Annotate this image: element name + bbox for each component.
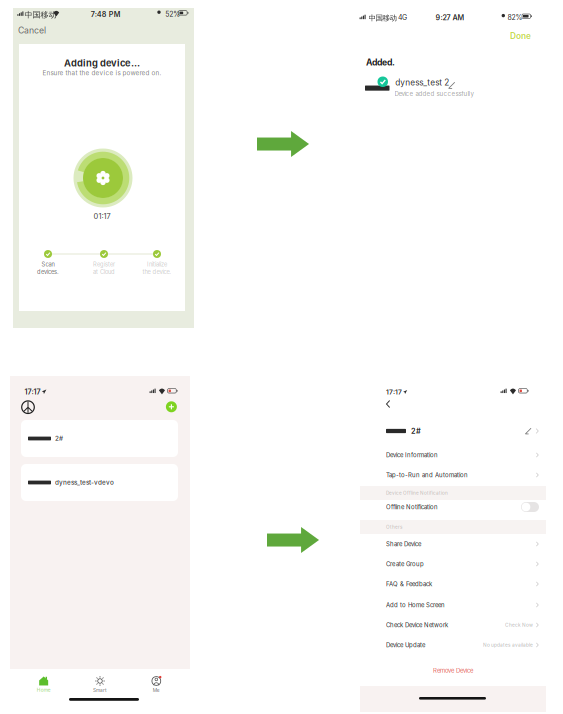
button[interactable]: Share Device [360, 537, 546, 551]
button[interactable]: Create Group [360, 557, 546, 571]
button[interactable]: Check Device Network [360, 618, 546, 632]
staticText: Check Now [505, 622, 533, 628]
staticText: Offline Notification [386, 503, 438, 511]
staticText: Device added successfully [394, 90, 473, 97]
button[interactable]: Remove Device [427, 664, 479, 677]
button[interactable]: Me [128, 676, 184, 693]
staticText: 82% [508, 13, 523, 22]
button[interactable]: Home [15, 676, 72, 693]
staticText: Scan [41, 261, 54, 268]
staticText: No updates available [483, 642, 533, 648]
staticText: 中国移动 [369, 13, 397, 23]
staticText: Others [386, 524, 402, 530]
staticText: 2# [411, 427, 421, 435]
staticText: dyness_test-vdevo [55, 479, 114, 486]
staticText: Register [93, 261, 115, 268]
staticText: Device Information [386, 451, 438, 459]
button[interactable]: Device Update [360, 638, 546, 652]
staticText: 52% [165, 10, 180, 18]
staticText: the device. [142, 268, 171, 275]
staticText: Adding device... [64, 57, 140, 69]
staticText: Added. [366, 57, 395, 67]
button[interactable]: FAQ & Feedback [360, 577, 546, 591]
staticText: Initialize [147, 261, 167, 268]
button[interactable]: Done [508, 29, 533, 43]
staticText: devices. [37, 268, 59, 275]
staticText: Home [37, 687, 51, 693]
staticText: at Cloud [93, 268, 115, 275]
staticText: Device Offline Notification [386, 490, 448, 496]
staticText: Add to Home Screen [386, 601, 445, 609]
staticText: FAQ & Feedback [386, 580, 432, 588]
staticText: Remove Device [433, 667, 473, 674]
staticText: 4G [398, 13, 407, 22]
staticText: Ensure that the device is powered on. [42, 69, 161, 77]
button[interactable]: Smart [72, 676, 128, 693]
button[interactable]: Tap-to-Run and Automation [360, 468, 546, 482]
button[interactable]: Offline Notification [360, 500, 546, 514]
staticText: 01:17 [93, 212, 110, 221]
staticText: 17:17 [386, 388, 402, 396]
staticText: 17:17 [25, 387, 41, 396]
staticText: 中国移动 [24, 10, 56, 20]
staticText: Share Device [386, 540, 421, 548]
staticText: Me [153, 687, 160, 693]
staticText: Cancel [18, 25, 46, 35]
button[interactable]: Device Information [360, 448, 546, 462]
staticText: 9:27 AM [436, 13, 465, 22]
staticText: Device Update [386, 641, 425, 649]
staticText: dyness_test 2 [395, 77, 449, 87]
button[interactable]: Add device [164, 400, 178, 414]
button[interactable]: Back [384, 398, 392, 410]
staticText: Check Device Network [386, 621, 448, 629]
button[interactable]: 2# [360, 423, 546, 439]
button[interactable]: Cancel [16, 23, 48, 37]
button[interactable]: Rename device [447, 80, 456, 90]
button[interactable]: Add to Home Screen [360, 598, 546, 612]
staticText: Tap-to-Run and Automation [386, 471, 468, 479]
staticText: Done [510, 31, 531, 41]
staticText: 2# [55, 435, 63, 442]
button[interactable]: dyness_test-vdevo [21, 464, 178, 501]
button[interactable]: 2# [21, 420, 178, 457]
staticText: Create Group [386, 560, 424, 568]
staticText: 7:48 PM [91, 10, 121, 19]
button[interactable]: Home [20, 399, 36, 415]
staticText: Smart [93, 687, 107, 693]
